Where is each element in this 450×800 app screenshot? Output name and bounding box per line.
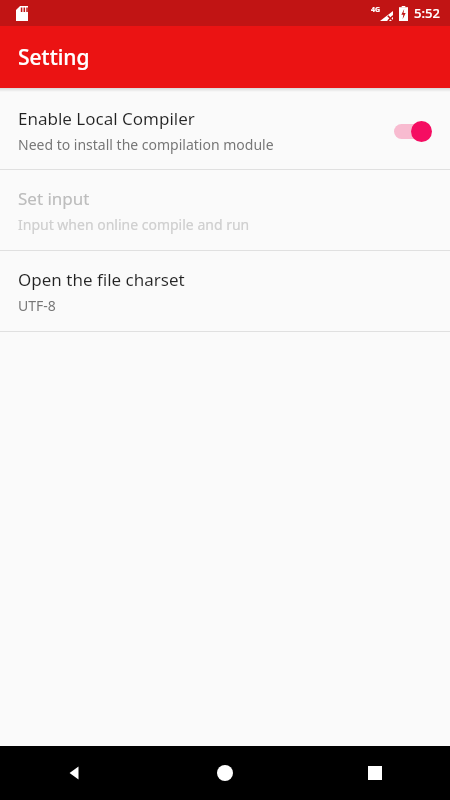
staticText: Setting — [18, 43, 90, 72]
staticText: UTF-8 — [18, 296, 56, 315]
staticText: Open the file charset — [18, 268, 185, 291]
staticText: 4G — [371, 5, 381, 15]
staticText: Input when online compile and run — [18, 215, 250, 234]
button[interactable]: Set input — [0, 170, 450, 250]
button[interactable]: Back — [0, 746, 150, 800]
button[interactable]: Enable Local Compiler toggle — [392, 117, 436, 145]
staticText: 5:52 — [414, 4, 440, 22]
button[interactable]: Recent apps — [300, 746, 450, 800]
staticText: Set input — [18, 187, 90, 210]
button[interactable]: Open the file charset — [0, 251, 450, 331]
staticText: Need to install the compilation module — [18, 135, 274, 154]
button[interactable]: Home — [150, 746, 300, 800]
staticText: Enable Local Compiler — [18, 107, 195, 130]
button[interactable]: Enable Local Compiler — [0, 92, 450, 169]
